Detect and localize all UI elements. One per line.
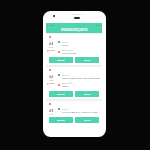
staticText: 4.6 <box>49 75 54 79</box>
staticText: DESTINATION <box>62 82 73 84</box>
staticText: rating <box>49 46 54 48</box>
staticText: $42.00 <box>47 82 55 85</box>
staticText: San Francisco <box>62 52 77 55</box>
button[interactable]: Decline <box>49 91 73 97</box>
staticText: 4.8 <box>49 42 54 46</box>
staticText: Decline <box>57 59 65 62</box>
staticText: PICK UP <box>62 74 69 76</box>
button[interactable]: Decline <box>49 117 73 123</box>
staticText: Agree <box>84 119 91 122</box>
staticText: TRACKING REQUESTS <box>61 28 88 32</box>
staticText: PICK UP <box>62 41 69 43</box>
staticText: Agree <box>84 93 91 96</box>
button[interactable]: Agree <box>75 91 99 97</box>
staticText: Decline <box>57 119 65 122</box>
button[interactable]: Agree <box>75 57 99 63</box>
staticText: PICK UP <box>62 108 69 110</box>
button[interactable]: Agree <box>75 117 99 123</box>
button[interactable]: 4.6 <box>46 67 102 99</box>
staticText: 1011 Old Rte Ave, Austin TX 78705, USA <box>62 111 100 114</box>
staticText: rating <box>49 79 54 81</box>
staticText: 1000 S Federal Hwy, Fort Lauderdale FL 3… <box>62 77 100 80</box>
staticText: Miami <box>62 85 69 88</box>
button[interactable]: 4.8 <box>46 34 102 65</box>
staticText: $24.50 <box>47 49 55 52</box>
staticText: 4.9 <box>49 109 54 113</box>
button[interactable]: Decline <box>49 57 73 63</box>
staticText: Decline <box>57 93 65 96</box>
button[interactable]: 4.9 <box>46 101 102 125</box>
staticText: rating <box>49 113 54 115</box>
staticText: 760 St <box>62 44 69 47</box>
staticText: Agree <box>84 59 91 62</box>
staticText: DESTINATION <box>62 49 73 51</box>
